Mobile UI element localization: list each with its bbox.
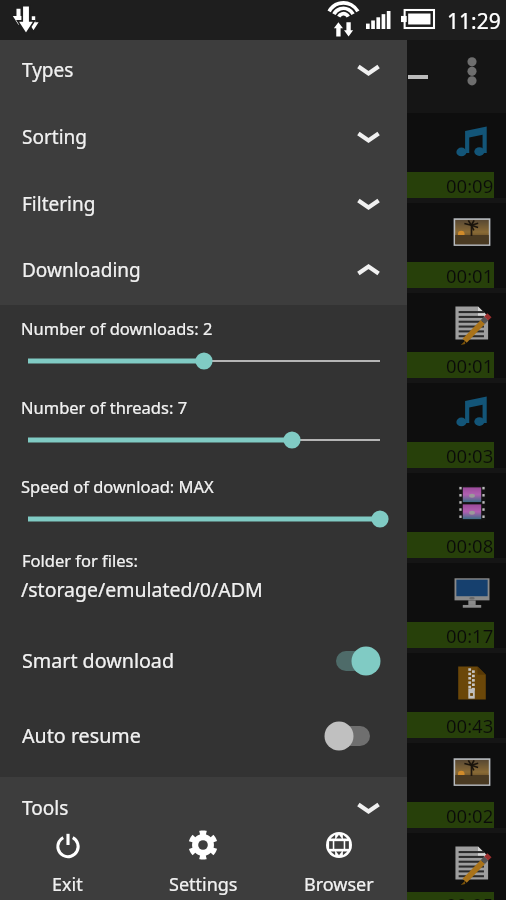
staticText: Sorting (22, 124, 87, 150)
staticText: 00:09 (446, 173, 494, 198)
button[interactable]: Types (0, 40, 407, 106)
button[interactable]: 00:01 (0, 203, 506, 293)
staticText: Number of threads: 7 (21, 396, 188, 418)
button[interactable]: Smart download (0, 621, 407, 700)
staticText: Filtering (22, 191, 96, 217)
button[interactable]: 00:02 (0, 743, 506, 833)
staticText: Downloading (22, 257, 141, 283)
button[interactable]: Tools (0, 778, 407, 844)
button[interactable]: Settings (135, 817, 271, 900)
staticText: 00:08 (446, 533, 494, 558)
button[interactable]: Downloading (0, 240, 407, 306)
button[interactable]: 00:03 (0, 383, 506, 473)
staticText: Number of downloads: 2 (21, 317, 213, 339)
staticText: 00:05 (446, 892, 494, 900)
staticText: Smart download (22, 647, 175, 674)
staticText: 00:01 (446, 353, 494, 378)
button[interactable]: Exit (0, 817, 135, 900)
button[interactable]: 00:08 (0, 473, 506, 563)
staticText: 00:43 (446, 713, 494, 738)
button[interactable]: Number of threads: 7 (0, 424, 407, 456)
button[interactable]: More options (460, 55, 484, 93)
button[interactable]: 00:17 (0, 563, 506, 653)
button[interactable]: Browser (271, 817, 407, 900)
staticText: 00:03 (446, 443, 494, 468)
staticText: Settings (169, 872, 238, 897)
staticText: Types (22, 57, 74, 83)
staticText: /storage/emulated/0/ADM (21, 576, 263, 603)
staticText: Exit (52, 872, 83, 897)
button[interactable]: Speed of download: MAX (0, 503, 407, 535)
staticText: 00:17 (446, 623, 494, 648)
staticText: 00:02 (446, 803, 494, 828)
button[interactable]: Sorting (0, 107, 407, 173)
button[interactable]: 00:43 (0, 653, 506, 743)
staticText: 00:01 (446, 263, 494, 288)
staticText: Folder for files: (22, 549, 138, 571)
button[interactable]: Auto resume (0, 696, 407, 775)
staticText: 11:29 (447, 7, 501, 36)
staticText: Speed of download: MAX (21, 475, 214, 497)
staticText: Auto resume (22, 722, 141, 749)
button[interactable]: 00:05 (0, 833, 506, 900)
staticText: Browser (304, 872, 374, 897)
button[interactable]: 00:09 (0, 113, 506, 203)
button[interactable]: Number of downloads: 2 (0, 345, 407, 377)
staticText: Tools (22, 795, 69, 821)
button[interactable]: Filtering (0, 174, 407, 240)
button[interactable]: 00:01 (0, 293, 506, 383)
